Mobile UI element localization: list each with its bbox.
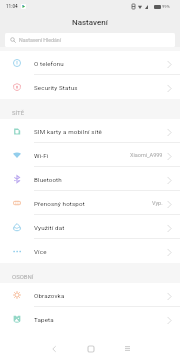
staticText: OSOBNÍ bbox=[12, 273, 34, 280]
button[interactable]: Back bbox=[42, 337, 65, 360]
staticText: Nastavení Hledání bbox=[19, 37, 61, 43]
button[interactable]: Recent apps bbox=[116, 337, 139, 360]
staticText: 11:04 bbox=[6, 4, 18, 9]
button[interactable]: Bluetooth bbox=[0, 167, 180, 191]
button[interactable]: Využití dat bbox=[0, 215, 180, 239]
button[interactable]: Nastavení Hledání bbox=[5, 33, 175, 47]
staticText: O telefonu bbox=[34, 60, 64, 67]
staticText: Více bbox=[34, 248, 47, 255]
staticText: 99% bbox=[162, 4, 170, 9]
staticText: SÍTĚ bbox=[12, 109, 25, 116]
staticText: Xiaomi_A999 bbox=[130, 152, 163, 158]
button[interactable]: Security Status bbox=[0, 75, 180, 99]
staticText: SIM karty a mobilní sítě bbox=[34, 128, 102, 135]
button[interactable]: Více bbox=[0, 239, 180, 263]
staticText: Security Status bbox=[34, 84, 78, 91]
button[interactable]: Home bbox=[79, 337, 102, 360]
staticText: Vyp. bbox=[152, 200, 163, 206]
button[interactable]: Tapeta bbox=[0, 307, 180, 331]
staticText: Tapeta bbox=[34, 316, 54, 323]
staticText: Využití dat bbox=[34, 224, 65, 231]
button[interactable]: Přenosný hotspot bbox=[0, 191, 180, 215]
staticText: Obrazovka bbox=[34, 292, 65, 299]
staticText: Nastavení bbox=[72, 18, 108, 27]
button[interactable]: Wi-Fi bbox=[0, 143, 180, 167]
staticText: Přenosný hotspot bbox=[34, 200, 85, 207]
button[interactable]: SIM karty a mobilní sítě bbox=[0, 119, 180, 143]
button[interactable]: O telefonu bbox=[0, 51, 180, 75]
staticText: Bluetooth bbox=[34, 176, 62, 183]
button[interactable]: Obrazovka bbox=[0, 283, 180, 307]
staticText: Wi-Fi bbox=[34, 152, 49, 159]
